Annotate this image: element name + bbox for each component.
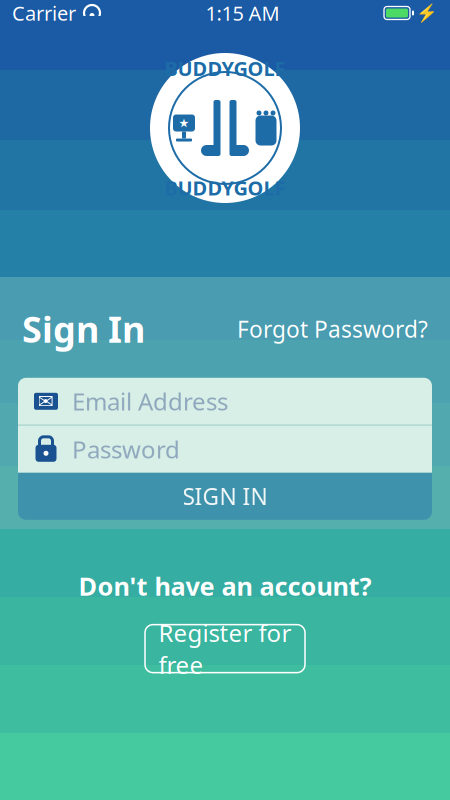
staticText: Password — [72, 433, 180, 465]
staticText: ★ — [178, 116, 189, 130]
button[interactable]: Password — [18, 426, 432, 473]
staticText: Forgot Password? — [237, 314, 428, 344]
button[interactable]: Register for free — [145, 625, 305, 673]
staticText: SIGN IN — [182, 481, 267, 511]
staticText: Register for free — [158, 617, 291, 680]
button[interactable]: ✉ — [18, 378, 432, 425]
staticText: Don't have an account? — [78, 569, 371, 603]
staticText: 1:15 AM — [205, 0, 279, 26]
staticText: ⚡ — [416, 3, 438, 23]
staticText: Sign In — [22, 305, 145, 353]
staticText: Carrier — [12, 0, 76, 26]
staticText: BUDDYGOLF — [164, 55, 285, 82]
button[interactable]: Forgot Password? — [237, 314, 428, 344]
staticText: Email Address — [72, 385, 228, 417]
staticText: BUDDYGOLF — [164, 174, 285, 201]
staticText: ✉ — [37, 390, 54, 413]
button[interactable]: SIGN IN — [18, 473, 432, 520]
